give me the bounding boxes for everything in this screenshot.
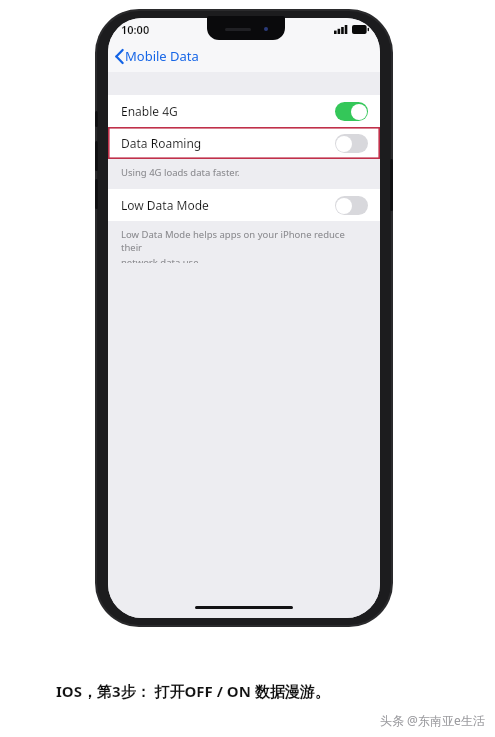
other: Cellular signal [334,25,348,34]
staticText: Low Data Mode [121,197,209,213]
button[interactable]: Low Data Mode toggle [335,196,368,215]
button[interactable]: Mobile Data [108,43,207,69]
button[interactable]: Low Data Mode [108,189,380,221]
staticText: Mobile Data [125,47,199,65]
staticText: network data use. [121,256,202,263]
button[interactable]: Enable 4G [108,95,380,127]
staticText: Using 4G loads data faster. [121,166,240,179]
staticText: Low Data Mode helps apps on your iPhone … [121,228,360,254]
other: Battery [352,25,369,34]
staticText: 10:00 [121,22,150,37]
button[interactable]: Data Roaming toggle [335,134,368,153]
staticText: 头条 @东南亚e生活 [380,712,485,728]
button[interactable]: Data Roaming [108,127,380,159]
staticText: IOS，第3步： 打开OFF / ON 数据漫游。 [56,681,330,701]
staticText: Data Roaming [121,135,202,151]
staticText: Enable 4G [121,103,178,119]
button[interactable]: Enable 4G toggle [335,102,368,121]
